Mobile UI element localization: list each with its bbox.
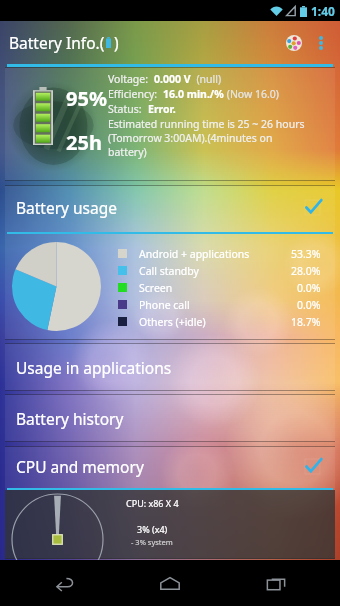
staticText: Status:	[108, 102, 148, 116]
staticText: 95%	[66, 85, 107, 112]
button[interactable]: More options	[309, 31, 333, 55]
staticText: 53.3%	[291, 247, 321, 261]
staticText: Battery usage	[16, 197, 118, 218]
staticText: 18.7%	[291, 315, 321, 329]
staticText: Screen	[139, 281, 173, 295]
staticText: 16.0 min./%	[163, 87, 224, 101]
button[interactable]: Recent apps	[252, 560, 300, 606]
staticText: (Now 16.0)	[224, 87, 279, 101]
staticText: - 3% system	[131, 537, 173, 547]
button[interactable]: 95%	[5, 67, 335, 181]
staticText: )	[114, 32, 119, 53]
button[interactable]: Back	[40, 560, 88, 606]
staticText: 25h	[66, 129, 102, 156]
staticText: Efficiency:	[108, 87, 163, 101]
staticText: Battery Info.(	[9, 32, 105, 53]
staticText: 1:40	[311, 3, 335, 19]
staticText: (null)	[191, 72, 222, 86]
staticText: 0.0%	[297, 281, 321, 295]
staticText: Battery history	[16, 408, 124, 429]
staticText: Android + applications	[139, 247, 250, 261]
staticText: CPU: x86 X 4	[126, 497, 179, 509]
staticText: Others (+idle)	[139, 315, 206, 329]
button[interactable]: Home	[146, 560, 194, 606]
staticText: 3% (x4)	[137, 523, 168, 535]
staticText: Error.	[148, 102, 176, 116]
button[interactable]: Themes	[279, 28, 309, 58]
staticText: CPU and memory	[16, 456, 144, 477]
staticText: Usage in applications	[16, 357, 172, 378]
staticText: Estimated running time is 25 ~ 26 hours …	[108, 117, 313, 159]
staticText: Phone call	[139, 298, 190, 312]
staticText: 0.000 V	[154, 72, 191, 86]
button[interactable]: Battery history	[5, 394, 335, 442]
staticText: Voltage:	[108, 72, 154, 86]
button[interactable]: CPU and memory	[5, 446, 335, 559]
button[interactable]: Usage in applications	[5, 343, 335, 391]
staticText: Call standby	[139, 264, 199, 278]
button[interactable]: Battery usage	[5, 185, 335, 340]
staticText: 28.0%	[291, 264, 321, 278]
staticText: 0.0%	[297, 298, 321, 312]
